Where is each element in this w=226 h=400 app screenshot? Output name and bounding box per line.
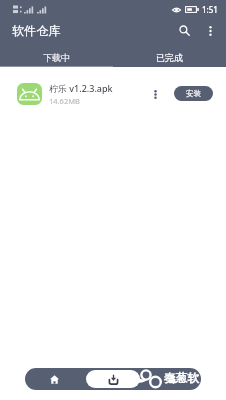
button[interactable]: Search [170,18,198,43]
staticText: 软件仓库 [12,23,61,38]
staticText: 下载中 [43,52,70,63]
button[interactable]: Item menu [147,83,163,105]
button[interactable]: Downloads [86,370,140,388]
button[interactable]: Home [25,370,83,388]
staticText: 1:51 [202,4,218,15]
staticText: 奏葱软 [164,371,199,386]
button[interactable]: 下载中 [0,43,113,67]
button[interactable]: 安装 [174,86,213,101]
staticText: 柠乐 v1.2.3.apk [49,82,113,94]
button[interactable]: 柠乐 v1.2.3.apk [0,67,226,120]
staticText: 安装 [186,89,201,98]
button[interactable]: 已完成 [113,43,226,67]
button[interactable]: More options [198,19,222,43]
staticText: 14.62MB [49,96,80,106]
button[interactable]: Profile [143,370,201,388]
staticText: 已完成 [156,52,183,63]
